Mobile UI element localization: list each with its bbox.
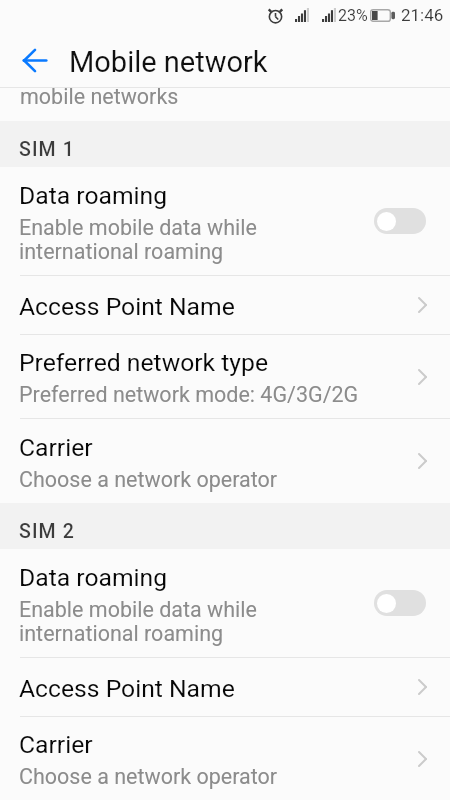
staticText: Choose a network operator [19, 764, 278, 789]
staticText: Enable mobile data while international r… [19, 215, 257, 264]
staticText: Access Point Name [19, 674, 235, 703]
staticText: 23% [338, 6, 368, 25]
button[interactable]: Data roaming [0, 549, 450, 657]
staticText: Data roaming [19, 563, 168, 592]
staticText: Carrier [19, 730, 93, 759]
button[interactable]: Access Point Name [0, 276, 450, 334]
staticText: Enable mobile data while international r… [19, 597, 257, 646]
staticText: SIM 2 [19, 520, 75, 543]
staticText: Mobile network [69, 45, 268, 79]
staticText: Carrier [19, 433, 93, 462]
staticText: Preferred network mode: 4G/3G/2G [19, 382, 359, 407]
staticText: Choose a network operator [19, 467, 278, 492]
button[interactable]: Carrier [0, 717, 450, 800]
button[interactable]: Data roaming [0, 167, 450, 275]
staticText: mobile networks [20, 84, 179, 109]
staticText: SIM 1 [19, 138, 75, 161]
staticText: Preferred network type [19, 348, 268, 377]
button[interactable]: mobile networks [0, 88, 450, 121]
button[interactable]: Back [0, 30, 69, 87]
button[interactable]: Access Point Name [0, 658, 450, 716]
staticText: Data roaming [19, 181, 168, 210]
staticText: 21:46 [401, 5, 444, 25]
staticText: Access Point Name [19, 292, 235, 321]
button[interactable]: Carrier [0, 419, 450, 503]
button[interactable]: Preferred network type [0, 335, 450, 418]
